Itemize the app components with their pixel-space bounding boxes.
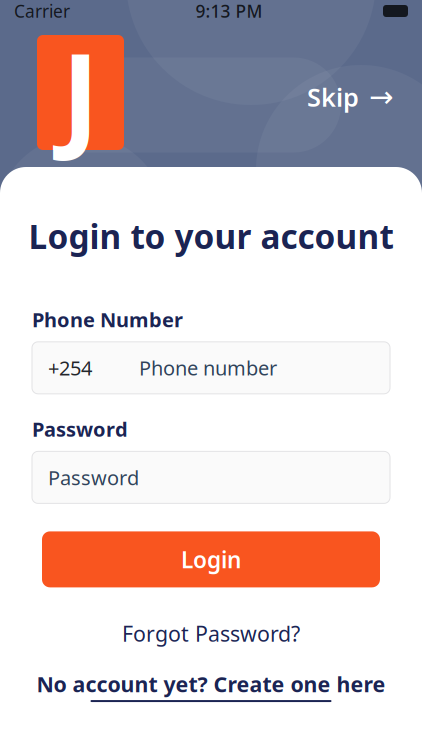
- staticText: J: [61, 16, 99, 169]
- staticText: +254: [48, 354, 92, 381]
- button[interactable]: Login: [42, 531, 380, 587]
- staticText: No account yet? Create one here: [36, 670, 385, 698]
- button[interactable]: No account yet? Create one here: [26, 664, 395, 708]
- staticText: Phone Number: [32, 306, 183, 333]
- staticText: Login to your account: [28, 214, 393, 258]
- staticText: Login: [181, 544, 241, 574]
- staticText: Carrier: [14, 0, 70, 22]
- staticText: Password: [32, 416, 128, 442]
- staticText: Skip: [307, 80, 359, 114]
- staticText: →: [369, 80, 394, 113]
- staticText: 9:13 PM: [195, 0, 262, 22]
- staticText: Password: [48, 464, 139, 491]
- staticText: Phone number: [139, 354, 277, 381]
- button[interactable]: Skip: [293, 72, 408, 122]
- button[interactable]: Forgot Password?: [106, 611, 316, 656]
- staticText: Forgot Password?: [122, 619, 300, 648]
